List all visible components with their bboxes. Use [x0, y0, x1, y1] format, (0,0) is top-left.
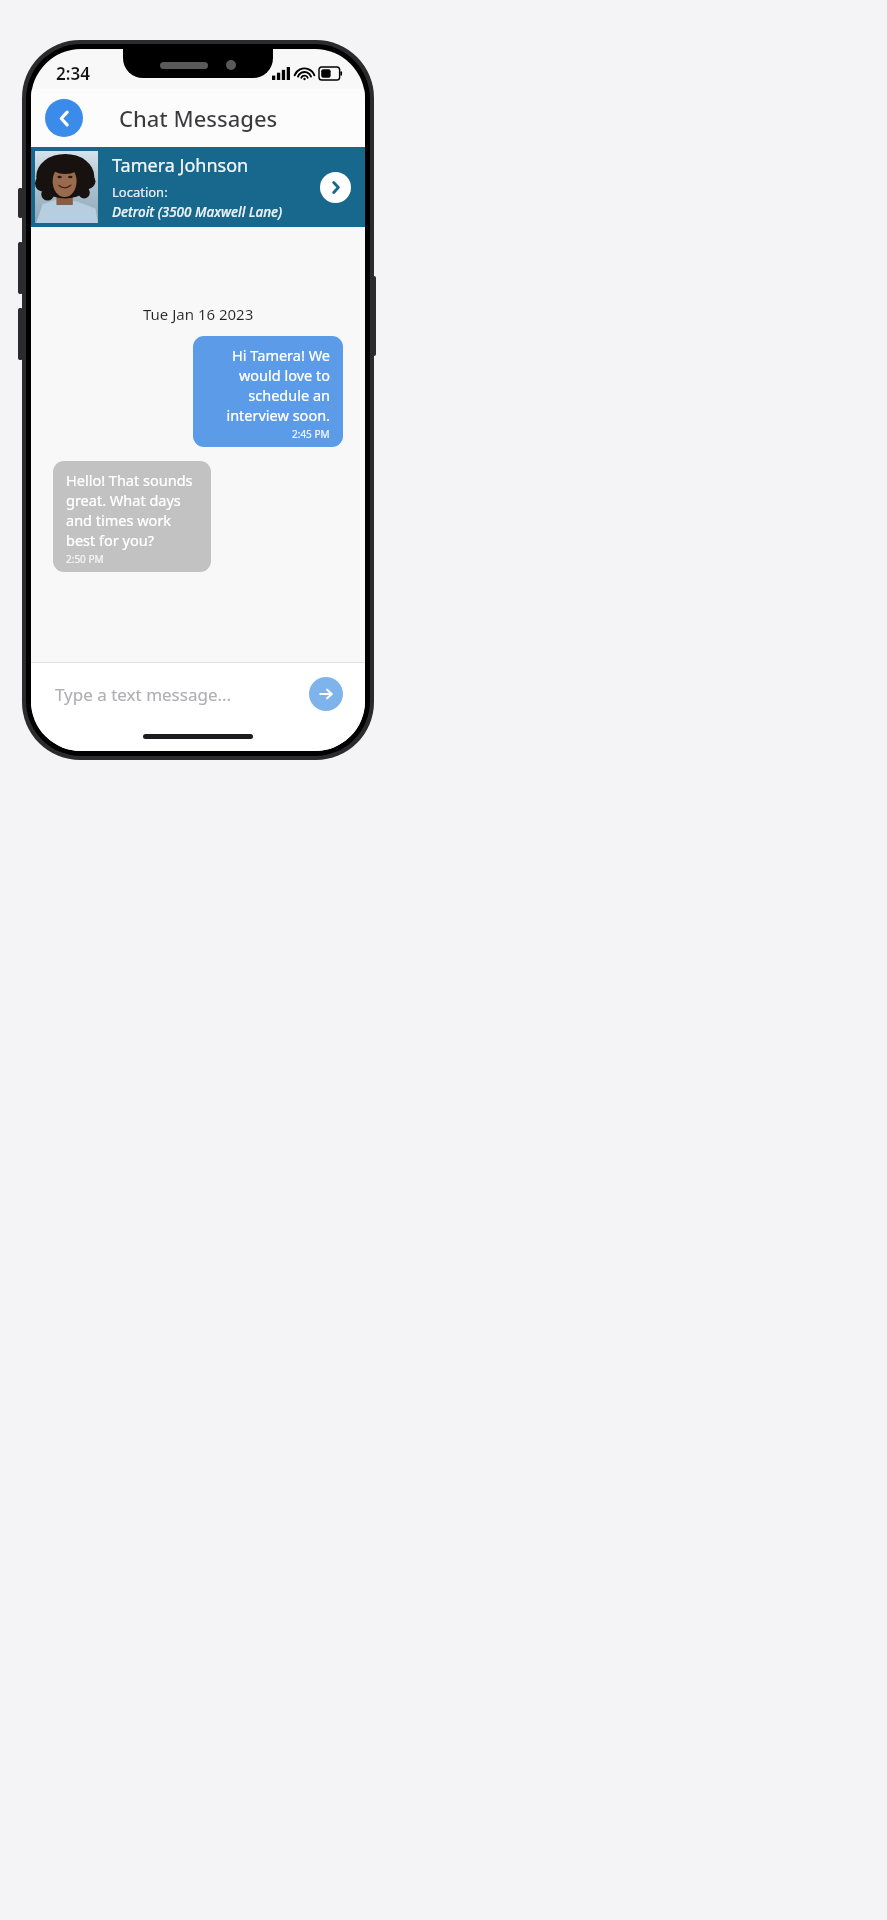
staticText: Tamera Johnson — [112, 153, 249, 178]
staticText: Hello! That sounds great. What days and … — [66, 470, 198, 550]
staticText: 2:34 — [56, 62, 90, 85]
staticText: Type a text message... — [55, 683, 232, 706]
button[interactable]: Hello! That sounds great. What days and … — [53, 461, 211, 572]
staticText: Chat Messages — [119, 103, 278, 133]
button[interactable]: Hi Tamera! We would love to schedule an … — [193, 336, 343, 447]
staticText: Location: — [112, 183, 168, 201]
button[interactable]: Back — [45, 99, 83, 137]
button[interactable]: Send message — [309, 677, 343, 711]
staticText: 2:50 PM — [66, 552, 104, 566]
button[interactable]: Open contact details — [320, 172, 351, 203]
staticText: Detroit (3500 Maxwell Lane) — [112, 203, 283, 221]
button[interactable]: Tamera Johnson — [31, 147, 365, 227]
staticText: Tue Jan 16 2023 — [143, 304, 254, 324]
button[interactable]: Type a text message... — [55, 683, 309, 706]
staticText: Hi Tamera! We would love to schedule an … — [206, 345, 330, 425]
staticText: 2:45 PM — [292, 427, 330, 441]
